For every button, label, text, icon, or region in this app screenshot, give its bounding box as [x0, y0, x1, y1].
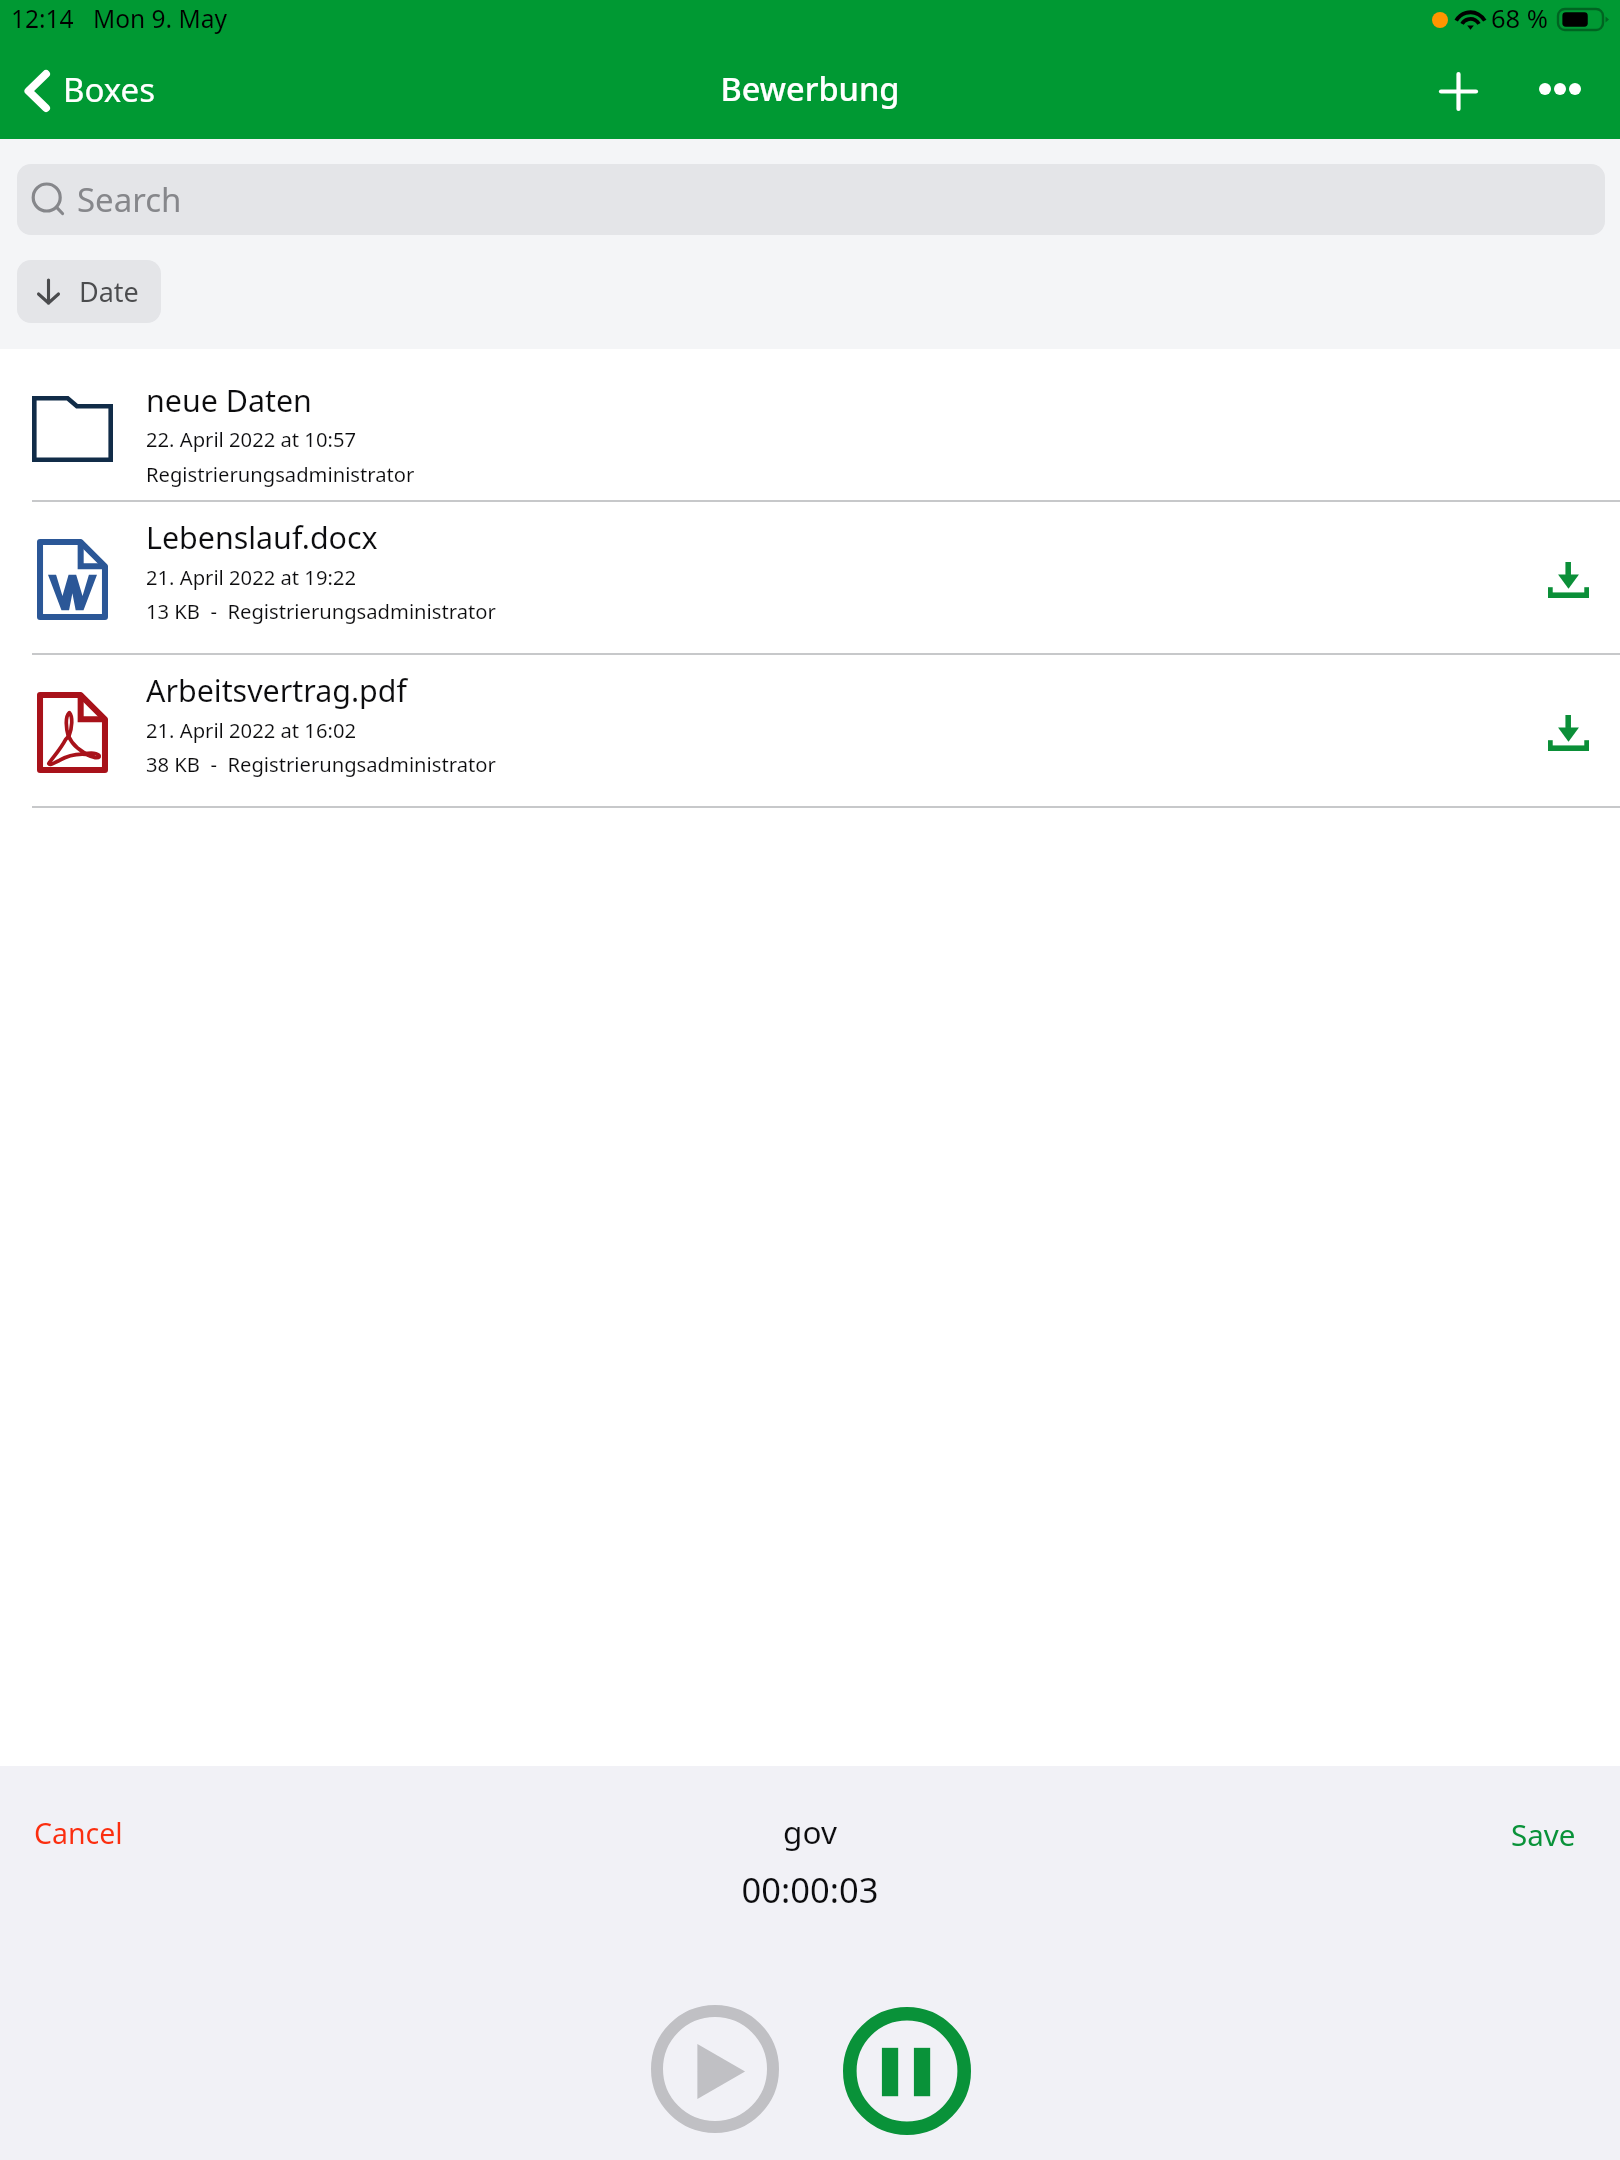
staticText: 13 KB - Registrierungsadministrator	[146, 597, 496, 625]
button[interactable]: More options	[1512, 50, 1608, 139]
button[interactable]: Play	[651, 2005, 779, 2133]
staticText: Bewerbung	[0, 66, 1620, 110]
staticText: Boxes	[63, 67, 155, 112]
button[interactable]: Date	[17, 260, 161, 323]
staticText: 68 %	[1491, 1, 1548, 36]
staticText: Search	[77, 177, 182, 222]
staticText: Date	[79, 273, 139, 310]
button[interactable]: Download	[1508, 502, 1620, 655]
button[interactable]: neue Daten	[0, 349, 1620, 502]
staticText: Arbeitsvertrag.pdf	[146, 670, 407, 711]
staticText: 21. April 2022 at 16:02	[146, 716, 356, 744]
button[interactable]: Add	[1414, 50, 1503, 139]
staticText: neue Daten	[146, 380, 312, 421]
staticText: 00:00:03	[0, 1866, 1620, 1913]
staticText: 38 KB - Registrierungsadministrator	[146, 750, 496, 778]
staticText: Mon 9. May	[93, 2, 227, 35]
staticText: gov	[0, 1810, 1620, 1853]
staticText: Registrierungsadministrator	[146, 460, 415, 488]
button[interactable]: Pause	[843, 2007, 971, 2135]
staticText: Lebenslauf.docx	[146, 517, 378, 558]
staticText: 21. April 2022 at 19:22	[146, 563, 356, 591]
button[interactable]: Save	[1491, 1802, 1596, 1866]
staticText: 22. April 2022 at 10:57	[146, 425, 356, 453]
button[interactable]: Lebenslauf.docx	[0, 502, 1620, 655]
button[interactable]: Boxes	[0, 50, 172, 139]
button[interactable]: Arbeitsvertrag.pdf	[0, 655, 1620, 808]
button[interactable]: Search	[17, 164, 1605, 235]
button[interactable]: Cancel	[14, 1802, 143, 1865]
button[interactable]: Download	[1508, 655, 1620, 808]
staticText: 12:14	[11, 2, 74, 35]
